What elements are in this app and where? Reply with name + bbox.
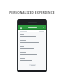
- button[interactable]: [20, 45, 44, 51]
- button[interactable]: [20, 33, 44, 39]
- button[interactable]: [20, 39, 44, 45]
- button[interactable]: More options: [42, 26, 45, 29]
- staticText: PERSONALIZED EXPERIENCE: [9, 11, 55, 15]
- button[interactable]: PERSONALIZED EXPERIENCE: [0, 10, 64, 16]
- button[interactable]: [20, 51, 44, 57]
- button[interactable]: Menu: [17, 19, 47, 72]
- button[interactable]: Menu: [19, 26, 22, 29]
- button[interactable]: [20, 57, 44, 63]
- button[interactable]: [29, 64, 36, 66]
